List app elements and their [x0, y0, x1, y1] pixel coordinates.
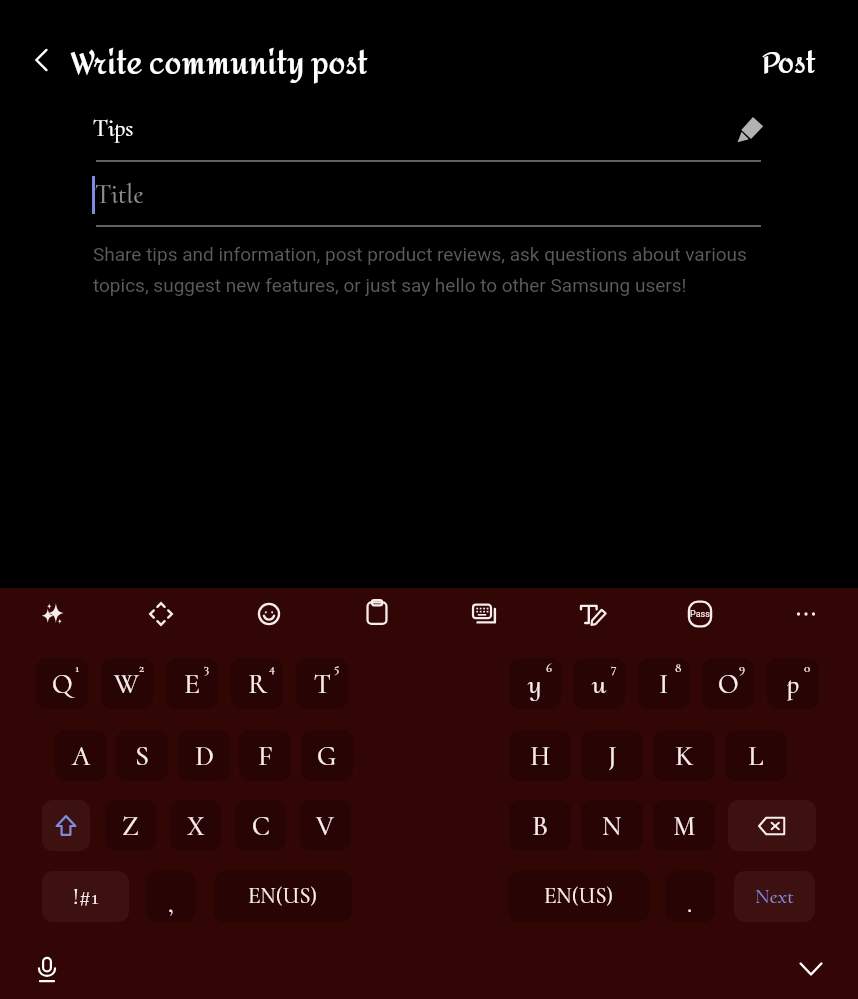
- button[interactable]: EN(US): [508, 871, 649, 922]
- staticText: 4: [269, 660, 275, 676]
- staticText: H: [530, 739, 551, 773]
- staticText: u: [592, 667, 607, 701]
- staticText: W: [114, 667, 140, 701]
- staticText: D: [195, 739, 214, 773]
- button[interactable]: .: [665, 871, 715, 922]
- button[interactable]: Q: [36, 658, 88, 709]
- button[interactable]: Backspace: [728, 800, 816, 851]
- button[interactable]: M: [653, 800, 715, 851]
- staticText: N: [602, 809, 622, 843]
- button[interactable]: I: [638, 658, 690, 709]
- button[interactable]: More options: [783, 591, 829, 637]
- staticText: EN(US): [544, 883, 614, 910]
- staticText: Pass: [690, 609, 710, 620]
- button[interactable]: Next: [734, 871, 815, 922]
- button[interactable]: y: [509, 658, 561, 709]
- staticText: Write community post: [71, 35, 368, 93]
- button[interactable]: J: [581, 730, 643, 781]
- button[interactable]: T: [296, 658, 348, 709]
- staticText: X: [187, 809, 205, 843]
- staticText: Q: [52, 667, 73, 701]
- button[interactable]: W: [101, 658, 153, 709]
- button[interactable]: G: [301, 730, 353, 781]
- button[interactable]: V: [300, 800, 351, 851]
- staticText: V: [316, 809, 335, 843]
- button[interactable]: Shift: [42, 800, 90, 851]
- button[interactable]: Edit category: [728, 107, 772, 151]
- staticText: Post: [762, 36, 816, 84]
- staticText: E: [184, 667, 200, 701]
- button[interactable]: R: [231, 658, 283, 709]
- staticText: 6: [546, 660, 553, 676]
- button[interactable]: Back: [20, 38, 64, 82]
- staticText: J: [608, 739, 617, 773]
- button[interactable]: C: [235, 800, 286, 851]
- staticText: 5: [334, 660, 340, 676]
- staticText: Tips: [93, 113, 134, 143]
- staticText: M: [673, 809, 696, 843]
- button[interactable]: ,: [146, 871, 196, 922]
- button[interactable]: B: [509, 800, 571, 851]
- staticText: T: [314, 667, 331, 701]
- button[interactable]: O: [702, 658, 754, 709]
- staticText: 9: [739, 660, 746, 676]
- staticText: ,: [168, 888, 174, 919]
- staticText: L: [748, 739, 764, 773]
- staticText: Title: [95, 178, 144, 211]
- button[interactable]: Writing assist: [29, 591, 75, 637]
- button[interactable]: D: [178, 730, 230, 781]
- button[interactable]: Hide keyboard: [788, 946, 834, 992]
- staticText: I: [659, 667, 669, 701]
- staticText: .: [687, 888, 693, 919]
- staticText: 8: [675, 660, 682, 676]
- staticText: 0: [804, 660, 811, 676]
- button[interactable]: K: [653, 730, 715, 781]
- button[interactable]: Move cursor: [138, 591, 184, 637]
- button[interactable]: !#1: [42, 871, 129, 922]
- staticText: C: [252, 809, 270, 843]
- button[interactable]: E: [166, 658, 218, 709]
- button[interactable]: F: [239, 730, 291, 781]
- button[interactable]: Samsung Pass: [677, 591, 723, 637]
- staticText: y: [528, 667, 542, 701]
- button[interactable]: X: [170, 800, 221, 851]
- button[interactable]: u: [573, 658, 625, 709]
- staticText: 7: [611, 660, 617, 676]
- button[interactable]: EN(US): [214, 871, 352, 922]
- button[interactable]: Handwriting: [570, 591, 616, 637]
- button[interactable]: Keyboard modes: [462, 591, 508, 637]
- staticText: Z: [122, 809, 139, 843]
- button[interactable]: Voice input: [24, 947, 70, 993]
- button[interactable]: p: [767, 658, 819, 709]
- staticText: F: [258, 739, 273, 773]
- button[interactable]: Emoji: [246, 591, 292, 637]
- button[interactable]: H: [509, 730, 571, 781]
- staticText: R: [248, 667, 267, 701]
- button[interactable]: Z: [105, 800, 156, 851]
- staticText: 1: [75, 660, 80, 676]
- button[interactable]: Clipboard: [354, 591, 400, 637]
- button[interactable]: L: [725, 730, 787, 781]
- button[interactable]: Post: [762, 36, 838, 84]
- staticText: K: [675, 739, 694, 773]
- staticText: Next: [755, 884, 794, 909]
- staticText: Share tips and information, post product…: [93, 243, 758, 296]
- staticText: A: [72, 739, 91, 773]
- button[interactable]: A: [55, 730, 107, 781]
- button[interactable]: S: [116, 730, 168, 781]
- staticText: p: [787, 667, 800, 701]
- button[interactable]: N: [581, 800, 643, 851]
- staticText: S: [135, 739, 149, 773]
- staticText: EN(US): [248, 883, 318, 910]
- staticText: B: [532, 809, 549, 843]
- staticText: !#1: [73, 883, 99, 911]
- staticText: 3: [204, 660, 210, 676]
- staticText: O: [718, 667, 739, 701]
- staticText: G: [317, 739, 337, 773]
- staticText: 2: [139, 660, 145, 676]
